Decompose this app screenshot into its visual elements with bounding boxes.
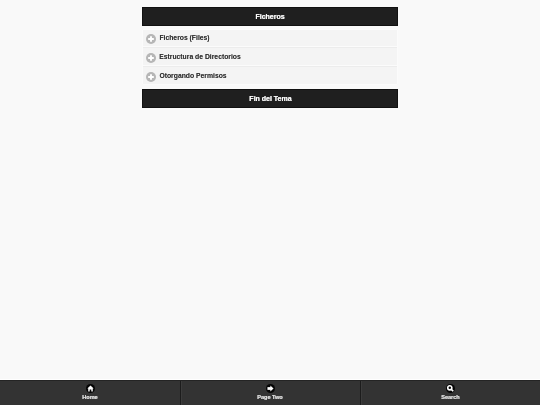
button[interactable]: Estructura de Directorios: [142, 48, 398, 65]
button[interactable]: Ficheros (Files): [142, 29, 398, 46]
staticText: Home: [82, 394, 98, 400]
staticText: Ficheros (Files): [159, 34, 210, 42]
staticText: Ficheros: [255, 13, 285, 21]
button[interactable]: Page Two: [180, 381, 360, 405]
staticText: Page Two: [257, 394, 283, 400]
button[interactable]: Search: [360, 381, 540, 405]
staticText: Estructura de Directorios: [159, 53, 241, 61]
button[interactable]: Fin del Tema: [142, 89, 398, 108]
staticText: Estructura de Directorios: [159, 53, 241, 61]
button[interactable]: Otorgando Permisos: [142, 67, 398, 85]
button[interactable]: Home: [0, 381, 180, 405]
staticText: Fin del Tema: [249, 95, 292, 103]
staticText: Search: [441, 394, 460, 400]
staticText: Otorgando Permisos: [159, 72, 227, 80]
staticText: Ficheros (Files): [159, 34, 210, 42]
button[interactable]: Ficheros: [142, 7, 398, 26]
staticText: Otorgando Permisos: [159, 72, 227, 80]
